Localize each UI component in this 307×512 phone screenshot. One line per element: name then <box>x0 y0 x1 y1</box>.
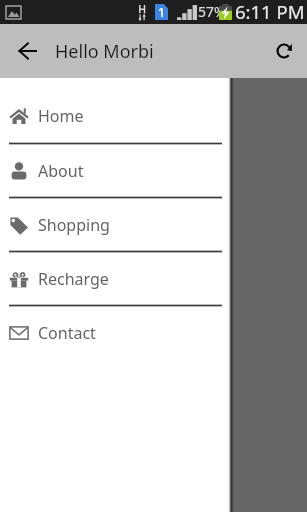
button[interactable]: Recharge <box>0 252 231 305</box>
button[interactable]: Refresh <box>261 24 307 78</box>
button[interactable]: Home <box>0 89 231 143</box>
button[interactable]: Shopping <box>0 198 231 251</box>
staticText: About <box>38 160 84 182</box>
button[interactable]: About <box>0 144 231 197</box>
staticText: 6:11 PM <box>235 0 305 23</box>
staticText: Contact <box>38 322 96 344</box>
staticText: Hello Morbi <box>55 39 154 64</box>
staticText: Shopping <box>38 214 110 236</box>
button[interactable]: Contact <box>0 306 231 359</box>
button[interactable]: Navigate up <box>0 24 55 78</box>
staticText: 57% <box>198 2 226 21</box>
staticText: 1 <box>158 4 165 20</box>
staticText: Recharge <box>38 268 109 290</box>
staticText: Home <box>38 105 84 127</box>
